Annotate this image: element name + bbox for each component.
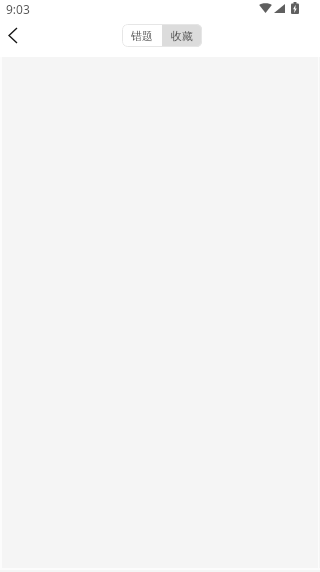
staticText: 收藏	[171, 29, 193, 43]
staticText: 错题	[131, 29, 153, 43]
button[interactable]: 收藏	[162, 24, 202, 47]
button[interactable]: Back	[1, 23, 25, 47]
button[interactable]: 错题	[122, 24, 162, 47]
staticText: 9:03	[6, 1, 30, 17]
